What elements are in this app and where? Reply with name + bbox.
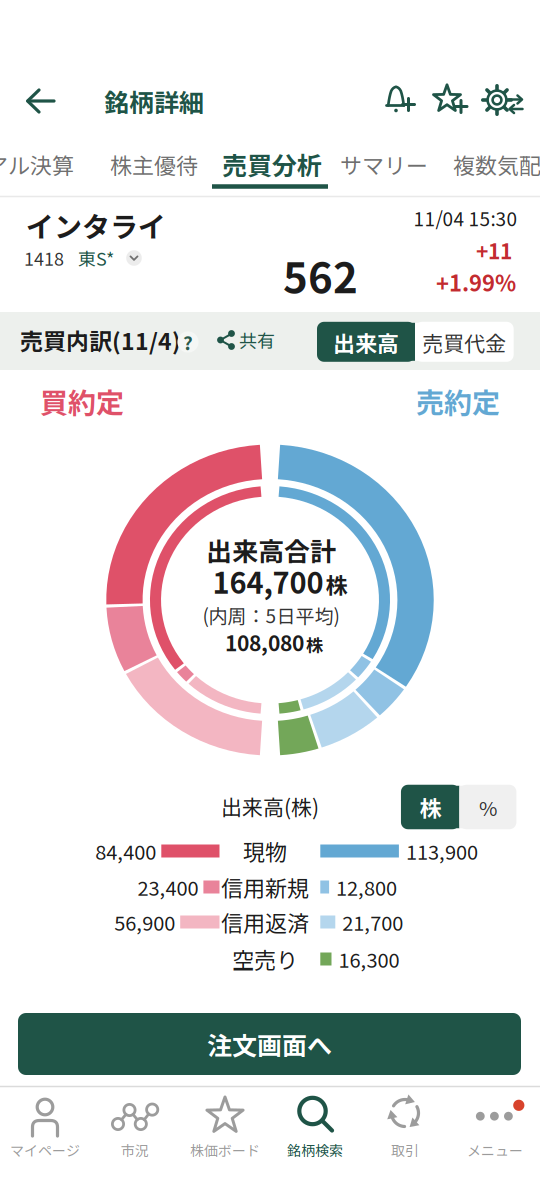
staticText: ? [183,328,193,356]
button[interactable]: 売買分析 [214,144,330,184]
staticText: +1.99% [436,266,516,298]
staticText: 56,900 [114,907,175,936]
staticText: 113,900 [406,836,478,865]
button[interactable]: アル決算 [0,144,85,184]
staticText: 108,080 [225,627,304,657]
staticText: 562 [283,245,358,305]
staticText: マイページ [10,1140,80,1160]
staticText: 東S* [78,245,114,271]
staticText: 複数気配 [453,149,540,180]
staticText: 売買内訳(11/4) [20,323,181,357]
staticText: 銘柄検索 [287,1140,343,1160]
staticText: 株 [325,568,347,600]
staticText: サマリー [340,149,428,180]
staticText: 出来高 [333,326,399,358]
button[interactable]: 出来高 [317,322,415,362]
staticText: 11/04 15:30 [413,204,517,232]
staticText: 23,400 [137,872,198,901]
staticText: 現物 [243,835,287,867]
staticText: 株主優待 [110,149,198,180]
staticText: (内周：5日平均) [202,601,339,629]
staticText: 出来高合計 [206,531,336,569]
button[interactable]: サマリー [329,144,439,184]
staticText: 共有 [239,327,275,353]
button[interactable]: メニュー [450,1087,540,1197]
staticText: 1418 [24,245,64,271]
button[interactable]: 銘柄検索 [270,1087,360,1197]
staticText: 注文画面へ [207,1026,332,1062]
button[interactable]: 株 [401,785,459,829]
staticText: 信用新規 [221,871,309,903]
staticText: 市況 [121,1140,149,1160]
staticText: 84,400 [95,836,156,865]
button[interactable]: Help [173,327,203,357]
button[interactable]: 株価ボード [180,1087,270,1197]
button[interactable]: 市況 [90,1087,180,1197]
button[interactable]: 売買代金 [415,322,514,362]
button[interactable]: Back [19,79,63,123]
staticText: 出来高(株) [221,791,319,821]
staticText: 売買代金 [422,327,506,357]
button[interactable]: Add to watchlist [430,78,476,122]
staticText: 売買分析 [222,146,322,182]
button[interactable]: Share [215,320,277,360]
button[interactable]: マイページ [0,1087,90,1197]
staticText: 21,700 [342,907,403,936]
staticText: 空売り [232,943,298,975]
staticText: アル決算 [0,149,74,180]
staticText: 12,800 [336,872,397,901]
staticText: 信用返済 [221,906,309,938]
button[interactable]: 注文画面へ [18,1013,521,1075]
button[interactable]: Settings [482,79,534,123]
staticText: 164,700 [212,560,323,602]
staticText: +11 [476,235,512,265]
staticText: 株 [306,631,323,656]
staticText: 16,300 [338,944,399,973]
staticText: 買約定 [40,381,124,421]
staticText: 売約定 [416,381,500,421]
staticText: メニュー [467,1140,523,1160]
staticText: % [479,793,497,822]
staticText: インタライ [26,205,166,245]
button[interactable]: 1418 [0,229,180,287]
staticText: 銘柄詳細 [104,83,204,119]
staticText: 取引 [391,1140,419,1160]
button[interactable]: Add alert [383,78,429,122]
staticText: 株 [419,791,441,823]
staticText: 株価ボード [190,1140,260,1160]
button[interactable]: % [459,785,516,829]
button[interactable]: 取引 [360,1087,450,1197]
button[interactable]: 株主優待 [99,144,209,184]
button[interactable]: 複数気配 [442,144,540,184]
